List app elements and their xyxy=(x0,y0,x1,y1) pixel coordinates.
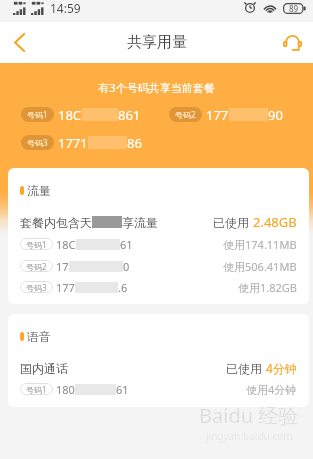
staticText: 已使用 xyxy=(213,214,253,230)
staticText: 号码3 xyxy=(26,282,47,293)
staticText: 号码1 xyxy=(26,239,47,250)
staticText: jingyan.baidu.com xyxy=(206,429,293,443)
staticText: 号码2 xyxy=(26,261,47,272)
staticText: 177 xyxy=(56,280,75,295)
staticText: 套餐内包含天 xyxy=(20,215,92,230)
staticText: 已使用 xyxy=(226,360,266,376)
staticText: 流量 xyxy=(27,183,51,198)
staticText: 86 xyxy=(127,134,142,152)
staticText: Baidu 经验 xyxy=(199,402,299,429)
staticText: 号码1 xyxy=(27,109,48,120)
staticText: 使用174.11MB xyxy=(223,237,297,252)
staticText: 18C xyxy=(56,237,76,252)
staticText: 国内通话 xyxy=(20,361,68,376)
staticText: 177 xyxy=(206,106,229,124)
staticText: 号码3 xyxy=(27,137,48,148)
staticText: 使用506.41MB xyxy=(223,259,297,274)
staticText: 1771 xyxy=(58,134,88,152)
staticText: 89 xyxy=(289,3,299,14)
button[interactable]: Back xyxy=(0,22,38,63)
staticText: 共享用量 xyxy=(127,33,187,52)
staticText: 语音 xyxy=(27,329,51,344)
staticText: 0 xyxy=(123,259,130,274)
staticText: 4分钟 xyxy=(266,360,297,376)
staticText: 有3个号码共享当前套餐 xyxy=(0,80,313,95)
staticText: 14:59 xyxy=(50,0,81,16)
button[interactable]: Customer service xyxy=(271,22,313,63)
staticText: 使用4分钟 xyxy=(246,382,297,397)
staticText: 号码2 xyxy=(175,109,196,120)
staticText: .6 xyxy=(118,280,128,295)
staticText: 享流量 xyxy=(122,215,158,230)
staticText: 61 xyxy=(120,237,133,252)
staticText: 90 xyxy=(268,106,283,124)
staticText: 180 xyxy=(56,382,75,397)
staticText: 61 xyxy=(116,382,129,397)
staticText: 使用1.82GB xyxy=(238,280,297,295)
staticText: 2.48GB xyxy=(253,213,297,231)
staticText: 17 xyxy=(56,259,69,274)
staticText: 18C xyxy=(58,106,82,124)
staticText: 号码1 xyxy=(26,384,47,395)
staticText: 861 xyxy=(118,106,141,124)
